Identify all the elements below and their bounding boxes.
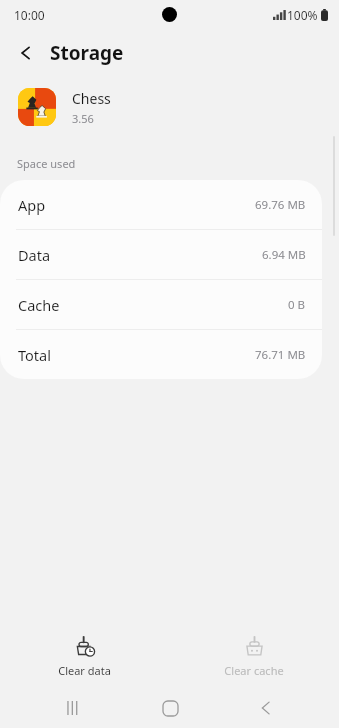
button[interactable]: Clear cache [169, 630, 339, 684]
button[interactable]: Chess [0, 76, 339, 138]
button[interactable]: Total [0, 330, 322, 379]
staticText: Cache [18, 295, 60, 315]
button[interactable]: Data [0, 230, 322, 279]
button[interactable]: Recents [49, 688, 97, 728]
button[interactable]: App [0, 180, 322, 229]
button[interactable]: Back [242, 688, 290, 728]
button[interactable]: Cache [0, 280, 322, 329]
button[interactable]: Clear data [0, 630, 169, 684]
staticText: 100% [287, 7, 318, 23]
staticText: Clear cache [224, 663, 284, 678]
staticText: 69.76 MB [255, 197, 306, 213]
button[interactable]: Home [146, 688, 194, 728]
staticText: Chess [72, 89, 111, 108]
staticText: 10:00 [14, 7, 45, 23]
staticText: 0 B [288, 297, 306, 313]
staticText: 3.56 [72, 111, 94, 126]
staticText: App [18, 195, 46, 215]
staticText: 6.94 MB [262, 247, 306, 263]
staticText: Clear data [58, 663, 111, 678]
staticText: 76.71 MB [255, 347, 306, 363]
staticText: Total [18, 345, 51, 365]
button[interactable]: Back [8, 35, 44, 71]
staticText: Data [18, 245, 51, 265]
staticText: Space used [17, 156, 76, 171]
staticText: Storage [50, 40, 124, 66]
